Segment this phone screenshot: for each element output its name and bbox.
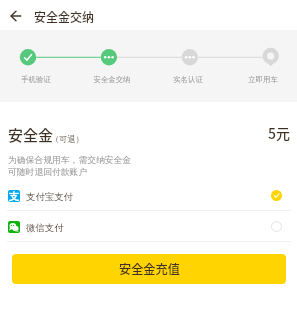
button[interactable]: 微信支付 — [0, 211, 297, 241]
staticText: 为确保合规用车，需交纳安全金 可随时退回付款账户 — [8, 155, 132, 177]
staticText: 安全金交纳 — [82, 75, 142, 84]
staticText: 实名认证 — [158, 75, 218, 84]
staticText: （可退） — [51, 134, 84, 144]
staticText: 安全金交纳 — [34, 8, 95, 25]
staticText: 安全金充值 — [119, 260, 180, 278]
staticText: 微信支付 — [26, 222, 64, 234]
staticText: 安全金 — [8, 124, 54, 146]
button[interactable]: 安全金充值 — [12, 254, 286, 284]
staticText: 手机验证 — [6, 75, 66, 84]
button[interactable]: Back — [0, 0, 30, 30]
button[interactable]: 支 — [0, 180, 297, 210]
staticText: 支 — [9, 190, 19, 202]
staticText: 立即用车 — [233, 75, 293, 84]
staticText: 支付宝支付 — [26, 191, 73, 203]
staticText: 5元 — [268, 123, 290, 143]
